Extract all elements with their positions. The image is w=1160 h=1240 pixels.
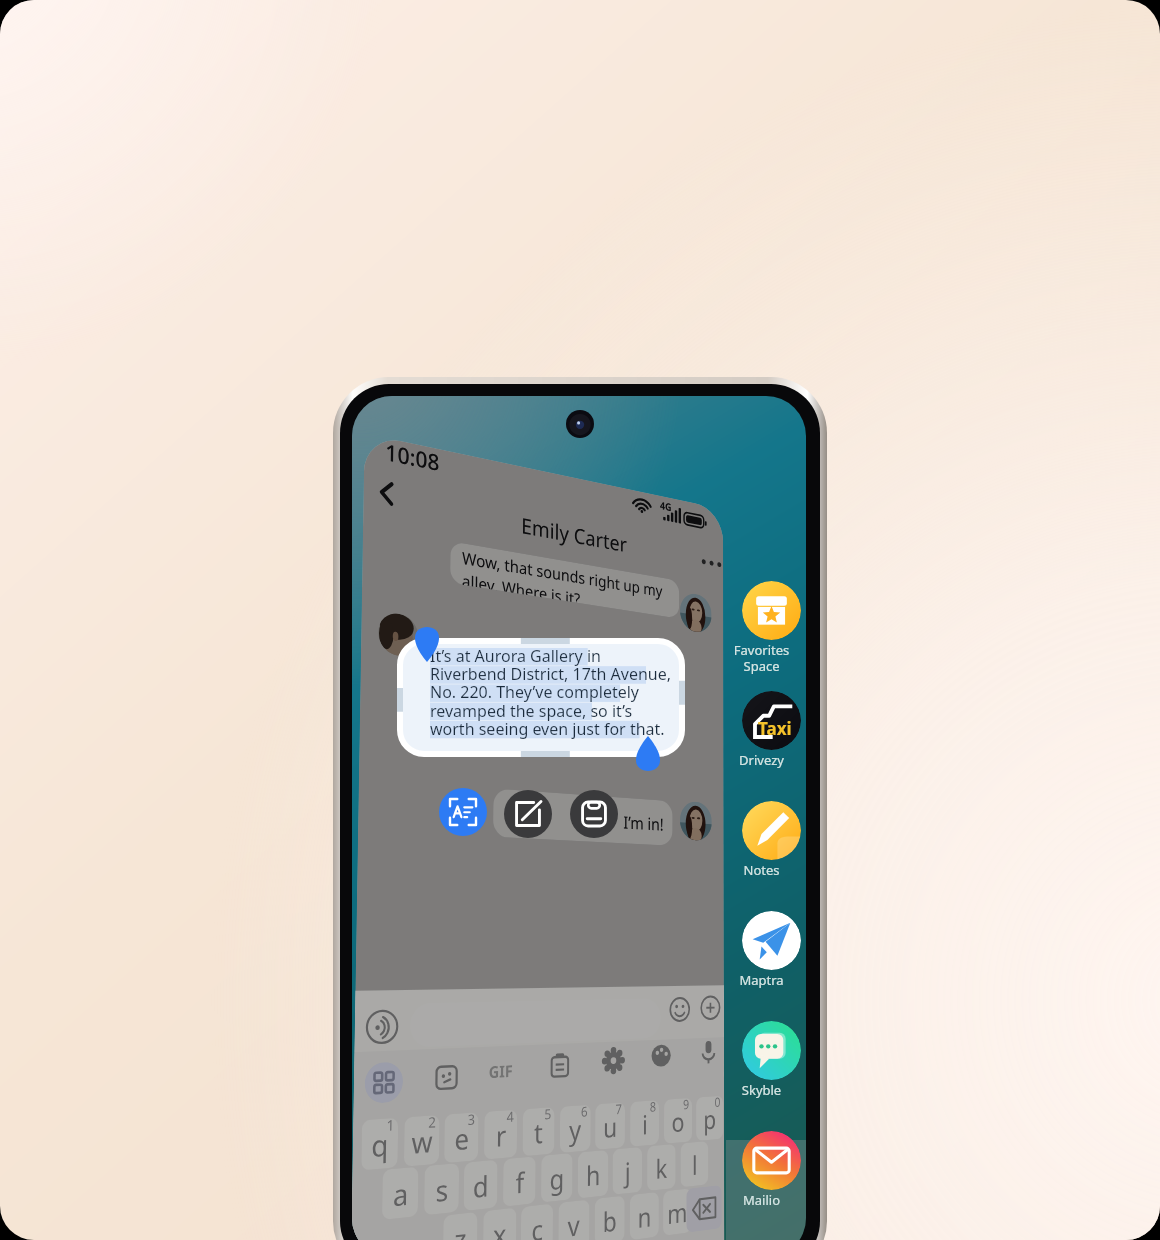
- button[interactable]: m: [663, 1188, 691, 1236]
- button[interactable]: w: [404, 1115, 440, 1167]
- button[interactable]: e: [444, 1112, 479, 1163]
- button[interactable]: Backspace: [686, 1185, 722, 1233]
- staticText: o: [671, 1103, 685, 1139]
- button[interactable]: Add attachment: [700, 995, 721, 1021]
- staticText: Favorites Space: [732, 641, 791, 674]
- staticText: x: [493, 1214, 507, 1240]
- button[interactable]: More options: [701, 555, 722, 572]
- button[interactable]: q: [361, 1118, 398, 1171]
- button[interactable]: Translate: [439, 788, 487, 836]
- staticText: Maptra: [732, 971, 791, 989]
- staticText: worth seeing even just for that.: [430, 718, 665, 740]
- button[interactable]: u: [595, 1102, 625, 1150]
- staticText: Emily Carter: [521, 511, 628, 559]
- button[interactable]: Favorites Space: [742, 581, 801, 686]
- button[interactable]: f: [503, 1156, 536, 1207]
- button[interactable]: n: [630, 1192, 659, 1240]
- staticText: k: [655, 1150, 667, 1186]
- staticText: 5: [544, 1107, 552, 1124]
- staticText: y: [569, 1110, 582, 1148]
- staticText: Mailio: [732, 1191, 791, 1209]
- staticText: alley. Where is it?: [462, 569, 580, 603]
- button[interactable]: Mailio: [742, 1131, 801, 1236]
- staticText: t: [534, 1113, 543, 1151]
- button[interactable]: r: [484, 1110, 517, 1160]
- button[interactable]: Taxi: [742, 691, 801, 796]
- button[interactable]: c: [521, 1203, 553, 1240]
- staticText: Wow, that sounds right up my: [462, 546, 663, 602]
- staticText: b: [603, 1202, 617, 1240]
- button[interactable]: Settings: [603, 1048, 623, 1073]
- staticText: v: [567, 1206, 580, 1240]
- button[interactable]: Back: [371, 473, 403, 512]
- staticText: 3: [467, 1112, 476, 1129]
- staticText: e: [454, 1118, 470, 1158]
- staticText: h: [586, 1156, 601, 1194]
- button[interactable]: d: [464, 1160, 497, 1211]
- button[interactable]: Theme: [651, 1044, 671, 1068]
- staticText: 1: [386, 1118, 395, 1135]
- staticText: 8: [650, 1100, 657, 1116]
- staticText: 4G: [660, 498, 672, 514]
- button[interactable]: Emoji: [669, 996, 690, 1023]
- button[interactable]: s: [424, 1163, 459, 1215]
- button[interactable]: k: [647, 1144, 676, 1191]
- button[interactable]: Voice message: [365, 1009, 399, 1045]
- staticText: No. 220. They’ve completely: [430, 681, 639, 703]
- staticText: It’s at Aurora Gallery in: [430, 645, 601, 667]
- staticText: Notes: [732, 861, 791, 879]
- staticText: q: [371, 1124, 389, 1165]
- button[interactable]: Keyboard apps: [364, 1061, 403, 1104]
- button[interactable]: Notes: [742, 801, 801, 906]
- staticText: d: [473, 1166, 489, 1206]
- staticText: i: [642, 1106, 648, 1142]
- button[interactable]: Voice input: [699, 1040, 718, 1064]
- staticText: u: [603, 1108, 618, 1145]
- staticText: z: [454, 1218, 468, 1240]
- staticText: 9: [683, 1098, 689, 1113]
- button[interactable]: a: [382, 1167, 418, 1220]
- staticText: revamped the space, so it’s: [430, 700, 633, 722]
- staticText: GIF: [489, 1060, 513, 1082]
- staticText: c: [531, 1210, 544, 1240]
- button[interactable]: b: [595, 1196, 625, 1240]
- button[interactable]: v: [558, 1199, 589, 1240]
- button[interactable]: h: [578, 1150, 608, 1199]
- staticText: m: [667, 1194, 688, 1231]
- staticText: 4: [507, 1110, 514, 1126]
- button[interactable]: Maptra: [742, 911, 801, 1016]
- button[interactable]: Save: [570, 790, 618, 838]
- staticText: g: [549, 1159, 564, 1197]
- button[interactable]: Stickers: [435, 1064, 458, 1091]
- button[interactable]: x: [483, 1207, 516, 1240]
- button[interactable]: Skyble: [742, 1021, 801, 1126]
- staticText: 6: [581, 1105, 588, 1121]
- staticText: Taxi: [758, 717, 792, 740]
- staticText: 2: [428, 1115, 437, 1132]
- staticText: I’m in!: [623, 811, 664, 836]
- button[interactable]: o: [664, 1098, 692, 1144]
- staticText: Skyble: [732, 1081, 791, 1099]
- button[interactable]: i: [630, 1100, 659, 1147]
- staticText: a: [393, 1173, 409, 1214]
- staticText: w: [411, 1121, 433, 1162]
- button[interactable]: z: [443, 1212, 478, 1240]
- button[interactable]: t: [522, 1107, 555, 1156]
- staticText: r: [496, 1116, 507, 1154]
- button[interactable]: Edit: [504, 790, 552, 838]
- staticText: n: [638, 1198, 652, 1235]
- button[interactable]: p: [696, 1096, 723, 1141]
- staticText: 10:08: [385, 438, 440, 478]
- button[interactable]: Clipboard: [549, 1053, 570, 1078]
- button[interactable]: j: [612, 1147, 642, 1195]
- button[interactable]: g: [541, 1153, 573, 1203]
- button[interactable]: l: [681, 1141, 708, 1187]
- button[interactable]: y: [560, 1105, 591, 1153]
- staticText: s: [435, 1169, 449, 1210]
- staticText: 0: [714, 1096, 721, 1111]
- staticText: 7: [615, 1102, 622, 1118]
- staticText: Riverbend District, 17th Avenue,: [430, 663, 672, 685]
- staticText: p: [703, 1101, 716, 1136]
- staticText: Drivezy: [732, 751, 791, 769]
